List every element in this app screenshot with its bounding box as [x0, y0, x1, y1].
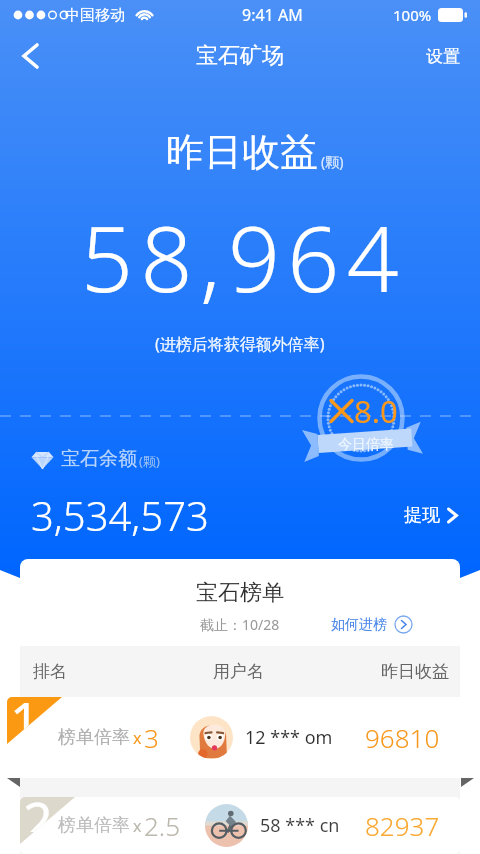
staticText: 今日倍率 — [338, 436, 394, 454]
staticText: 2 — [23, 797, 53, 832]
staticText: 58 *** cn — [260, 813, 340, 838]
button[interactable]: 如何进榜 — [328, 612, 460, 637]
staticText: 设置 — [426, 46, 460, 67]
staticText: 榜单倍率 — [58, 814, 130, 837]
staticText: 1 — [10, 697, 40, 732]
staticText: 宝石榜单 — [20, 579, 460, 607]
staticText: 昨日收益 — [166, 128, 318, 176]
staticText: 3,534,573 — [31, 488, 209, 542]
button[interactable]: 提现 — [400, 500, 462, 531]
staticText: x — [133, 815, 142, 837]
button[interactable]: Back — [6, 32, 54, 80]
staticText: 9:41 AM — [242, 4, 303, 26]
staticText: 提现 — [404, 504, 440, 527]
staticText: 8.0 — [354, 390, 398, 432]
staticText: (颗) — [321, 152, 344, 171]
staticText: x — [133, 727, 142, 749]
staticText: 昨日收益 — [381, 661, 449, 682]
staticText: (颗) — [139, 452, 160, 470]
staticText: 12 *** om — [245, 725, 333, 750]
staticText: 82937 — [365, 808, 440, 843]
button[interactable]: 设置 — [406, 38, 480, 75]
staticText: 宝石余额 — [61, 447, 137, 471]
button[interactable]: 2 — [20, 797, 460, 854]
staticText: 58,964 — [81, 195, 407, 319]
staticText: 96810 — [365, 720, 440, 755]
staticText: 如何进榜 — [331, 616, 387, 634]
staticText: 100% — [393, 5, 432, 25]
staticText: 2.5 — [144, 808, 181, 843]
staticText: 宝石矿场 — [196, 42, 284, 70]
staticText: 用户名 — [213, 661, 264, 682]
button[interactable]: 1 — [7, 697, 474, 778]
staticText: 排名 — [33, 661, 67, 682]
staticText: 截止：10/28 — [200, 615, 280, 634]
staticText: 中国移动 — [65, 6, 125, 25]
staticText: 榜单倍率 — [58, 726, 130, 749]
staticText: 3 — [144, 720, 159, 755]
staticText: (进榜后将获得额外倍率) — [155, 333, 325, 355]
